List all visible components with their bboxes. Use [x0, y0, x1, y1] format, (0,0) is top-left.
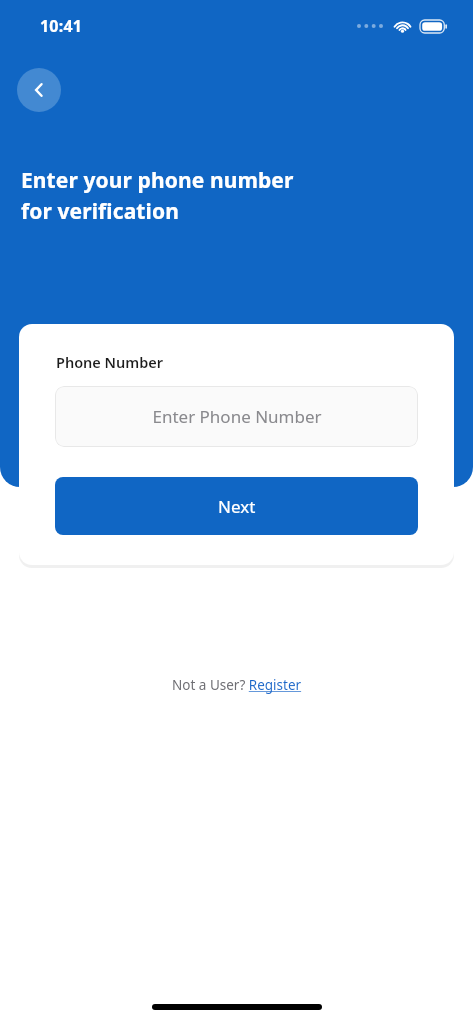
button[interactable]: Not a User? Register — [166, 673, 308, 697]
button[interactable]: Next — [55, 477, 418, 535]
button[interactable]: Back — [17, 68, 61, 112]
staticText: 10:41 — [40, 15, 83, 37]
staticText: Enter Phone Number — [152, 405, 322, 428]
staticText: Enter your phone number for verification — [21, 166, 294, 225]
staticText: Next — [218, 495, 256, 518]
staticText: Phone Number — [56, 352, 164, 372]
staticText: Not a User? Register — [172, 676, 302, 694]
button[interactable]: Enter Phone Number — [55, 386, 418, 447]
